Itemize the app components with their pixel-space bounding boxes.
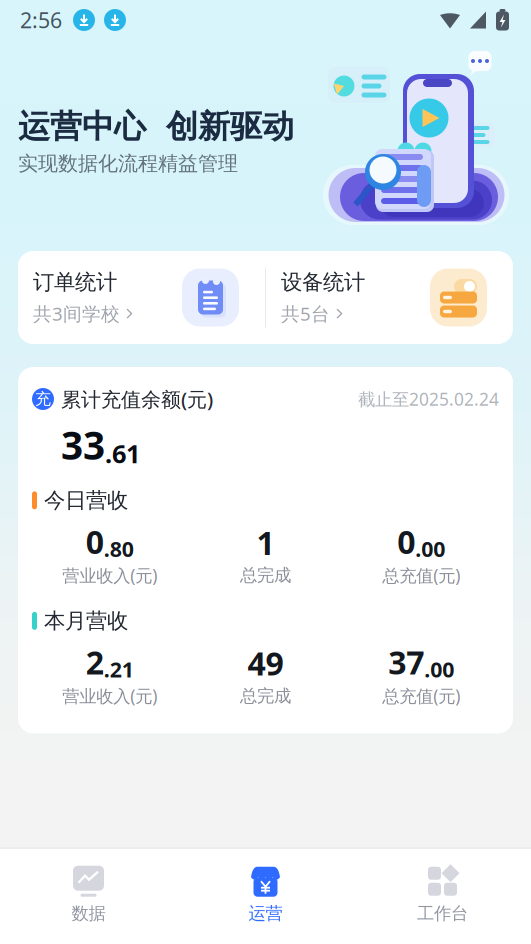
staticText: 总充值(元) [382,684,460,707]
staticText: .00 [415,534,445,563]
staticText: 0 [86,520,104,563]
staticText: 运营 [248,903,282,924]
staticText: 2 [86,641,104,683]
staticText: 49 [247,642,283,684]
staticText: 共5台 [281,301,330,326]
staticText: .80 [104,534,134,563]
staticText: .00 [424,655,454,683]
staticText: 总完成 [240,685,291,706]
staticText: 2:56 [20,6,62,34]
staticText: 0 [397,520,415,563]
staticText: 营业收入(元) [62,684,157,707]
staticText: 累计充值余额(元) [61,386,213,412]
button[interactable]: 运营 [177,866,354,924]
staticText: 设备统计 [281,269,365,295]
staticText: 截止至2025.02.24 [358,387,499,410]
staticText: 共3间学校 [33,301,120,326]
staticText: 订单统计 [33,269,117,295]
staticText: 充 [35,389,51,409]
staticText: 37 [388,641,424,683]
staticText: 总完成 [240,565,291,586]
staticText: 运营中心 创新驱动 [18,107,294,146]
button[interactable]: 数据 [0,866,177,924]
button[interactable]: 工作台 [354,866,531,924]
staticText: 实现数据化流程精益管理 [18,151,238,176]
staticText: 工作台 [417,903,468,924]
staticText: .21 [104,655,134,683]
staticText: 数据 [71,903,105,924]
staticText: .61 [105,437,140,470]
button[interactable]: 订单统计 [18,268,265,326]
staticText: 本月营收 [44,608,128,634]
staticText: 总充值(元) [382,564,460,587]
staticText: 今日营收 [44,487,128,513]
button[interactable]: 设备统计 [266,268,513,326]
staticText: 33 [61,419,105,470]
staticText: 1 [256,521,274,564]
staticText: 营业收入(元) [62,564,157,587]
